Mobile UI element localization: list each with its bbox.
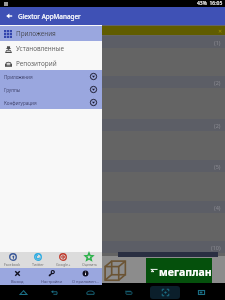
button[interactable]: Recents bbox=[120, 285, 136, 300]
staticText: Выход bbox=[11, 279, 24, 284]
staticText: (1) bbox=[214, 39, 221, 46]
button[interactable]: (2) bbox=[0, 119, 225, 131]
staticText: Установленные bbox=[16, 44, 65, 53]
staticText: Приложения bbox=[16, 29, 56, 38]
staticText: ✕ bbox=[218, 28, 223, 34]
button[interactable]: Screenshot bbox=[157, 285, 173, 300]
staticText: мегаплан bbox=[159, 265, 212, 279]
button[interactable]: группы открывают контекстное меню bbox=[0, 26, 225, 35]
staticText: О приложен... bbox=[72, 279, 99, 284]
staticText: (10) bbox=[211, 244, 221, 251]
staticText: (2) bbox=[214, 122, 221, 129]
button[interactable]: Настройки bbox=[34, 268, 68, 285]
button[interactable]: Приложения bbox=[0, 26, 102, 41]
button[interactable]: Facebook bbox=[0, 252, 25, 268]
staticText: (4) bbox=[214, 204, 221, 211]
staticText: Настройки bbox=[41, 279, 62, 284]
staticText: Оценить bbox=[82, 262, 97, 267]
button[interactable]: (2) bbox=[0, 76, 225, 88]
staticText: 43% 16:05 bbox=[197, 0, 223, 7]
staticText: (5) bbox=[214, 163, 221, 170]
button[interactable]: Установленные bbox=[0, 41, 102, 56]
button[interactable]: Twitter bbox=[25, 252, 50, 268]
button[interactable]: Выход bbox=[0, 268, 34, 285]
staticText: Конфигурация bbox=[4, 100, 37, 106]
button[interactable]: Back bbox=[0, 7, 18, 25]
button[interactable]: Back bbox=[46, 285, 62, 300]
button[interactable]: Google+ bbox=[50, 252, 76, 268]
button[interactable]: Приложения bbox=[0, 70, 102, 83]
button[interactable]: Репозиторий bbox=[0, 56, 102, 70]
staticText: Приложения bbox=[4, 74, 33, 80]
staticText: (2) bbox=[214, 79, 221, 86]
staticText: Twitter bbox=[32, 262, 44, 267]
button[interactable]: Конфигурация bbox=[0, 96, 102, 109]
button[interactable]: Home bbox=[82, 285, 98, 300]
button[interactable]: Expand bbox=[193, 285, 209, 300]
staticText: Glextor AppManager bbox=[18, 12, 81, 21]
staticText: Google+ bbox=[56, 262, 71, 267]
button[interactable]: (10) bbox=[0, 241, 225, 253]
button[interactable]: (1) bbox=[0, 36, 225, 48]
button[interactable]: (4) bbox=[0, 201, 225, 213]
button[interactable]: Оценить bbox=[76, 252, 102, 268]
button[interactable]: О приложен... bbox=[68, 268, 102, 285]
staticText: Группы bbox=[4, 87, 21, 93]
button[interactable]: мегаплан bbox=[146, 258, 212, 284]
staticText: Репозиторий bbox=[16, 59, 57, 68]
staticText: группы открывают контекстное меню bbox=[3, 28, 86, 34]
button[interactable]: (5) bbox=[0, 160, 225, 172]
staticText: Facebook bbox=[4, 262, 21, 267]
button[interactable]: Triangle back bbox=[15, 285, 31, 300]
button[interactable]: Группы bbox=[0, 83, 102, 96]
